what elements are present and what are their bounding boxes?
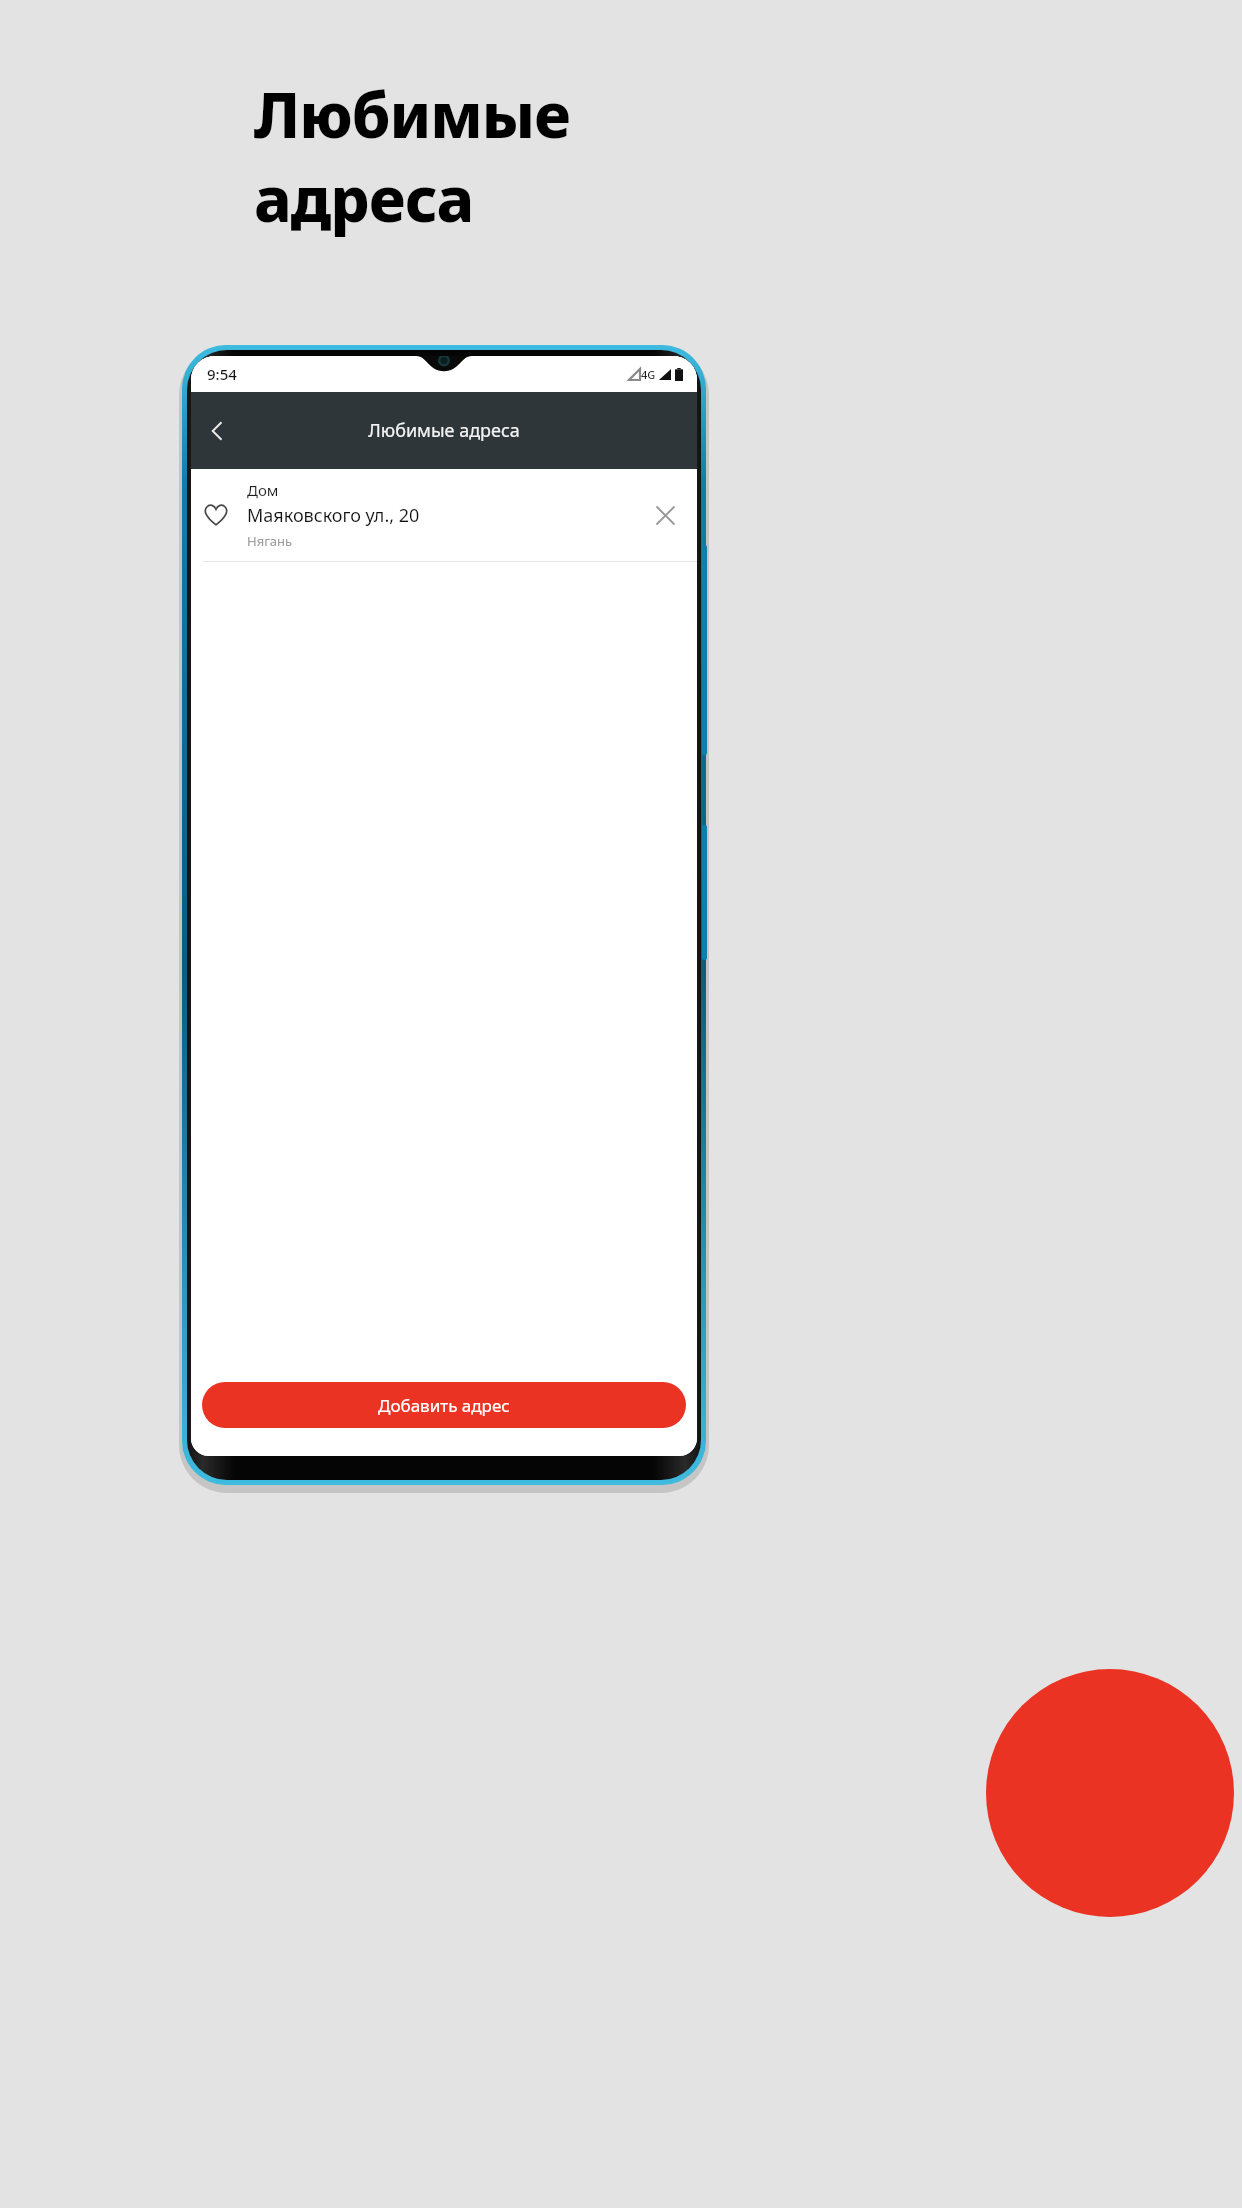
staticText: Добавить адрес [378, 1394, 510, 1417]
staticText: Любимые [254, 72, 570, 156]
staticText: Дом [247, 480, 279, 500]
staticText: адреса [254, 156, 474, 240]
staticText: Любимые адреса [368, 418, 520, 443]
staticText: 9:54 [207, 364, 237, 384]
button[interactable]: Удалить адрес [645, 495, 685, 535]
staticText: Нягань [247, 532, 293, 550]
button[interactable]: Назад [191, 404, 245, 458]
staticText: Маяковского ул., 20 [247, 503, 420, 528]
button[interactable]: Добавить адрес [202, 1382, 686, 1428]
button[interactable]: Дом [191, 469, 697, 562]
staticText: 4G [641, 367, 656, 382]
